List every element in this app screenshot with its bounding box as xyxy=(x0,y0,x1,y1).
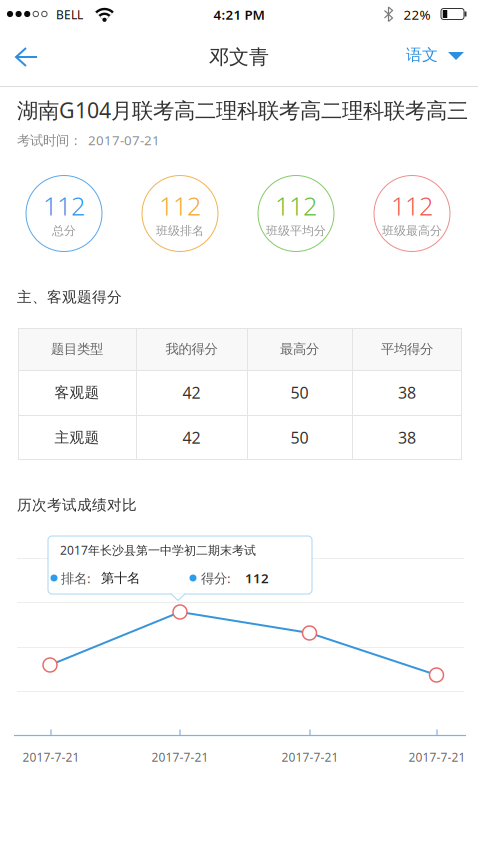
staticText: 班级平均分 xyxy=(266,223,326,238)
staticText: 语文 xyxy=(406,45,438,65)
staticText: 班级最高分 xyxy=(382,223,442,238)
staticText: 主、客观题得分 xyxy=(17,288,122,306)
staticText: 112 xyxy=(159,189,201,222)
staticText: 排名: xyxy=(61,569,91,587)
staticText: 班级排名 xyxy=(156,223,204,238)
staticText: 总分 xyxy=(52,223,76,238)
staticText: 考试时间： 2017-07-21 xyxy=(17,131,160,149)
staticText: 我的得分 xyxy=(165,341,217,357)
staticText: 平均得分 xyxy=(381,341,433,357)
staticText: 112 xyxy=(275,189,317,222)
staticText: 4:21 PM xyxy=(213,6,264,23)
staticText: BELL xyxy=(56,6,83,22)
staticText: 2017-7-21 xyxy=(22,749,79,765)
staticText: 主观题 xyxy=(54,428,99,446)
staticText: 最高分 xyxy=(280,341,319,357)
staticText: 湖南G104月联考高二理科联考高二理科联考高三 xyxy=(17,96,468,124)
staticText: 2017-7-21 xyxy=(281,749,338,765)
staticText: 2017年长沙县第一中学初二期末考试 xyxy=(60,542,256,558)
staticText: 38 xyxy=(398,382,416,403)
staticText: 42 xyxy=(182,427,200,448)
staticText: 题目类型 xyxy=(51,341,103,357)
staticText: 邓文青 xyxy=(209,45,269,69)
staticText: 22% xyxy=(403,6,430,23)
staticText: 2017-7-21 xyxy=(408,749,465,765)
staticText: 112 xyxy=(43,189,85,222)
button[interactable]: Back xyxy=(4,35,48,79)
staticText: 112 xyxy=(391,189,433,222)
staticText: 112 xyxy=(245,569,269,587)
staticText: 客观题 xyxy=(54,383,99,401)
staticText: 50 xyxy=(290,382,308,403)
staticText: 得分: xyxy=(201,569,231,587)
staticText: 42 xyxy=(182,382,200,403)
staticText: 2017-7-21 xyxy=(151,749,208,765)
staticText: 38 xyxy=(398,427,416,448)
staticText: 第十名 xyxy=(101,570,140,586)
button[interactable]: 语文 xyxy=(398,40,468,70)
staticText: 历次考试成绩对比 xyxy=(17,496,137,514)
staticText: 50 xyxy=(290,427,308,448)
